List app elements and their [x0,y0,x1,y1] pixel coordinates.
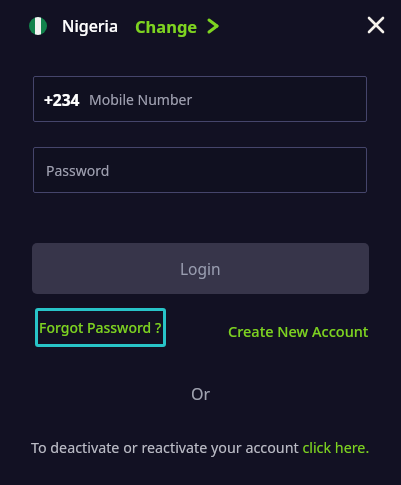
button[interactable] [362,11,390,39]
staticText: Login [180,258,221,279]
button[interactable]: Password [33,147,367,193]
staticText: Or [191,383,211,405]
button[interactable]: +234 [33,76,367,122]
staticText: Nigeria [62,15,119,37]
staticText: Password [46,161,110,180]
staticText: Mobile Number [89,90,193,109]
staticText: Forgot Password ? [39,318,162,337]
button[interactable]: Login [32,243,369,294]
button[interactable]: Change [135,15,218,37]
button[interactable]: To deactivate or reactivate your account… [0,438,401,457]
staticText: +234 [44,89,80,110]
button[interactable]: Forgot Password ? [35,308,166,347]
staticText: To deactivate or reactivate your account… [31,438,370,457]
staticText: Change [135,15,198,37]
button[interactable]: Create New Account [228,321,369,341]
